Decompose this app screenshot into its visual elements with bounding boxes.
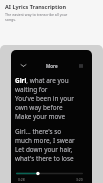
staticText: AI Lyrics Transcription (5, 3, 67, 10)
button[interactable]: Menu (75, 60, 86, 71)
staticText: The easiest way to transcribe all your s… (5, 12, 73, 22)
staticText: More (46, 63, 58, 69)
staticText: Girl... there's so much more, I swear Le… (15, 127, 75, 163)
staticText: Girl, what are you waiting for You've be… (15, 76, 74, 121)
staticText: 3:20 (76, 177, 83, 182)
staticText: 0:28 (18, 177, 25, 182)
button[interactable]: Seek (16, 171, 83, 176)
button[interactable]: Collapse (18, 60, 29, 71)
